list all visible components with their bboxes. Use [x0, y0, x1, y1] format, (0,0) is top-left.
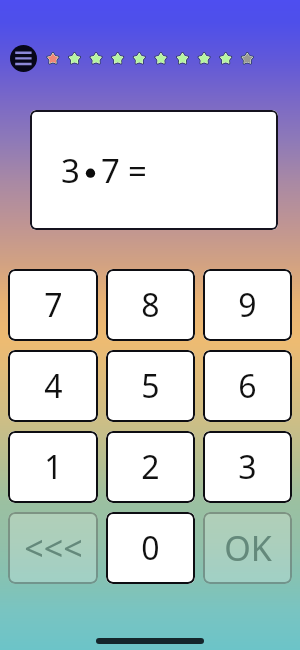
staticText: 7: [44, 283, 63, 327]
staticText: 0: [141, 526, 160, 570]
button[interactable]: 1: [8, 431, 98, 503]
staticText: 9: [238, 283, 257, 327]
button[interactable]: 4: [8, 350, 98, 422]
button[interactable]: 3: [203, 431, 292, 503]
staticText: 2: [141, 445, 160, 489]
button[interactable]: 8: [106, 269, 195, 341]
button[interactable]: 9: [203, 269, 292, 341]
staticText: =: [128, 148, 147, 193]
staticText: 4: [44, 364, 63, 408]
button[interactable]: 0: [106, 512, 195, 584]
button[interactable]: 5: [106, 350, 195, 422]
button[interactable]: OK: [203, 512, 292, 584]
staticText: OK: [224, 525, 272, 571]
button[interactable]: Menu: [10, 45, 37, 72]
staticText: 3: [238, 445, 257, 489]
staticText: 8: [141, 283, 160, 327]
button[interactable]: 6: [203, 350, 292, 422]
staticText: 1: [44, 445, 63, 489]
button[interactable]: 2: [106, 431, 195, 503]
staticText: <<<: [24, 525, 83, 571]
button[interactable]: 7: [8, 269, 98, 341]
staticText: 6: [238, 364, 257, 408]
button[interactable]: <<<: [8, 512, 98, 584]
staticText: 5: [141, 364, 160, 408]
staticText: 3: [61, 148, 80, 193]
staticText: 7: [101, 148, 120, 193]
